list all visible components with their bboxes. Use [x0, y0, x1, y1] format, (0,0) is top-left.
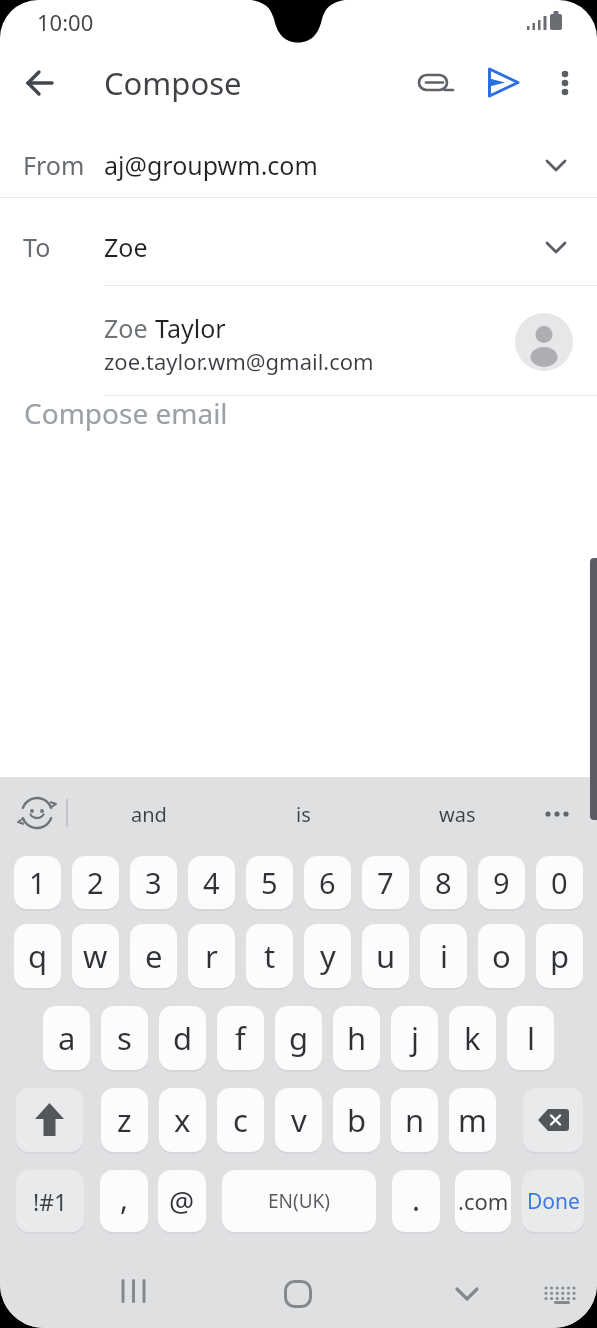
button[interactable] [14, 790, 60, 836]
button[interactable]: v [275, 1088, 322, 1152]
button[interactable] [531, 790, 583, 838]
staticText: a [58, 1017, 76, 1059]
staticText: 8 [435, 863, 452, 902]
button[interactable]: k [449, 1006, 496, 1070]
button[interactable]: e [130, 924, 177, 988]
button[interactable]: m [449, 1088, 496, 1152]
staticText: i [440, 935, 448, 977]
button[interactable] [0, 287, 597, 395]
button[interactable]: j [391, 1006, 438, 1070]
button[interactable]: Done [522, 1170, 584, 1232]
button[interactable]: was [383, 788, 531, 840]
button[interactable]: u [362, 924, 409, 988]
button[interactable]: @ [158, 1170, 206, 1232]
staticText: To [23, 230, 51, 264]
button[interactable]: 4 [188, 856, 235, 909]
staticText: From [23, 148, 85, 182]
button[interactable]: n [391, 1088, 438, 1152]
button[interactable]: EN(UK) [222, 1170, 376, 1232]
staticText: o [492, 935, 511, 977]
button[interactable]: .com [455, 1170, 511, 1232]
button[interactable]: x [159, 1088, 206, 1152]
button[interactable]: and [75, 788, 223, 840]
button[interactable]: 3 [130, 856, 177, 909]
button[interactable]: 0 [536, 856, 583, 909]
button[interactable]: b [333, 1088, 380, 1152]
button[interactable] [443, 1270, 491, 1318]
staticText: z [117, 1099, 132, 1141]
staticText: 10:00 [37, 7, 94, 37]
button[interactable]: p [536, 924, 583, 988]
staticText: and [131, 801, 167, 828]
button[interactable] [540, 1270, 588, 1318]
staticText: EN(UK) [268, 1188, 331, 1214]
button[interactable]: 2 [72, 856, 119, 909]
button[interactable] [109, 1270, 157, 1318]
staticText: Zoe [104, 311, 155, 345]
button[interactable]: a [43, 1006, 90, 1070]
staticText: . [412, 1179, 421, 1220]
button[interactable]: 5 [246, 856, 293, 909]
button[interactable]: g [275, 1006, 322, 1070]
button[interactable]: 7 [362, 856, 409, 909]
button[interactable]: 1 [14, 856, 61, 909]
button[interactable] [16, 1088, 83, 1152]
button[interactable] [16, 59, 64, 107]
button[interactable] [0, 120, 597, 198]
staticText: p [550, 935, 570, 977]
staticText: @ [169, 1182, 195, 1220]
staticText: , [120, 1178, 129, 1219]
button[interactable] [274, 1270, 322, 1318]
staticText: d [173, 1017, 193, 1059]
button[interactable]: !#1 [16, 1170, 84, 1232]
staticText: m [458, 1099, 487, 1141]
button[interactable]: . [392, 1170, 440, 1232]
button[interactable]: i [420, 924, 467, 988]
staticText: aj@groupwm.com [104, 148, 318, 182]
button[interactable]: l [507, 1006, 554, 1070]
button[interactable]: d [159, 1006, 206, 1070]
button[interactable] [523, 1088, 583, 1152]
button[interactable] [532, 223, 580, 271]
staticText: j [411, 1017, 419, 1059]
button[interactable] [0, 198, 597, 286]
staticText: !#1 [33, 1186, 68, 1217]
button[interactable] [479, 58, 527, 106]
staticText: 4 [203, 863, 220, 902]
staticText: l [527, 1017, 535, 1059]
button[interactable] [409, 58, 457, 106]
staticText: Done [527, 1187, 580, 1216]
button[interactable]: 8 [420, 856, 467, 909]
staticText: r [205, 935, 218, 977]
staticText: t [264, 935, 276, 977]
button[interactable]: is [229, 788, 377, 840]
button[interactable]: o [478, 924, 525, 988]
staticText: b [347, 1099, 367, 1141]
button[interactable]: f [217, 1006, 264, 1070]
button[interactable]: 9 [478, 856, 525, 909]
button[interactable]: r [188, 924, 235, 988]
button[interactable]: z [101, 1088, 148, 1152]
staticText: f [235, 1017, 246, 1059]
button[interactable] [541, 59, 589, 107]
button[interactable]: q [14, 924, 61, 988]
button[interactable]: s [101, 1006, 148, 1070]
staticText: 1 [29, 863, 46, 902]
button[interactable]: y [304, 924, 351, 988]
staticText: .com [458, 1186, 509, 1216]
button[interactable] [532, 141, 580, 189]
button[interactable]: , [100, 1170, 148, 1232]
button[interactable]: w [72, 924, 119, 988]
staticText: c [233, 1099, 248, 1141]
staticText: w [83, 935, 108, 977]
staticText: e [145, 935, 163, 977]
staticText: Compose email [24, 394, 228, 432]
staticText: 2 [87, 863, 104, 902]
staticText: k [464, 1017, 481, 1059]
button[interactable]: 6 [304, 856, 351, 909]
staticText: Zoe [104, 230, 148, 264]
staticText: 9 [493, 863, 510, 902]
button[interactable]: t [246, 924, 293, 988]
button[interactable]: h [333, 1006, 380, 1070]
button[interactable]: c [217, 1088, 264, 1152]
